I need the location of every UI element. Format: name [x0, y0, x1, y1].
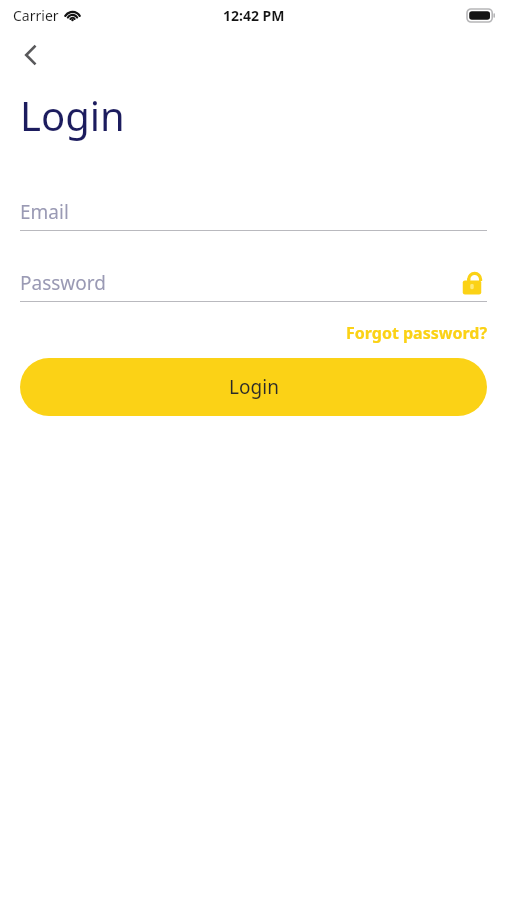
button[interactable]: Forgot password? — [346, 320, 488, 346]
staticText: 12:42 PM — [223, 6, 285, 25]
button[interactable]: Email — [20, 194, 487, 231]
staticText: Login — [229, 374, 279, 400]
staticText: Forgot password? — [346, 322, 488, 344]
staticText: Carrier — [13, 6, 59, 25]
button[interactable]: Login — [20, 358, 487, 416]
staticText: Login — [20, 88, 125, 142]
staticText: Email — [20, 199, 69, 225]
button[interactable]: Password — [20, 265, 487, 302]
button[interactable]: Show password — [457, 268, 487, 298]
staticText: Password — [20, 270, 106, 296]
button[interactable]: Back — [12, 36, 50, 74]
